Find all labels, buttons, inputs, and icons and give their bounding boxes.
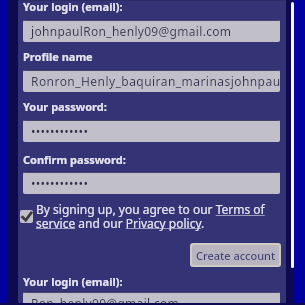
staticText: Ronron_Henly_baquiran_marinasjohnpaul (31, 73, 280, 89)
staticText: •••••••••••• (31, 175, 89, 191)
staticText: Create account (196, 248, 276, 263)
staticText: Your login (email): (23, 0, 123, 14)
button[interactable]: Ronron_Henly_baquiran_marinasjohnpaul (23, 70, 280, 92)
staticText: Your password: (23, 99, 107, 114)
staticText: Confirm password: (23, 152, 126, 167)
button[interactable]: johnpaulRon_henly09@gmail.com (23, 20, 280, 42)
button[interactable]: Ron_henly09@gmail.com (23, 292, 280, 305)
staticText: Profile name (23, 49, 93, 64)
staticText: Ron_henly09@gmail.com (31, 295, 180, 305)
button[interactable]: •••••••••••• (23, 172, 280, 194)
staticText: Your login (email): (23, 274, 123, 289)
button[interactable]: Create account (192, 245, 279, 265)
staticText: johnpaulRon_henly09@gmail.com (31, 23, 232, 39)
staticText: •••••••••••• (31, 123, 89, 139)
button[interactable]: •••••••••••• (23, 120, 280, 142)
button[interactable]: By signing up, you agree to our Terms of… (36, 201, 268, 231)
button[interactable] (20, 210, 33, 223)
